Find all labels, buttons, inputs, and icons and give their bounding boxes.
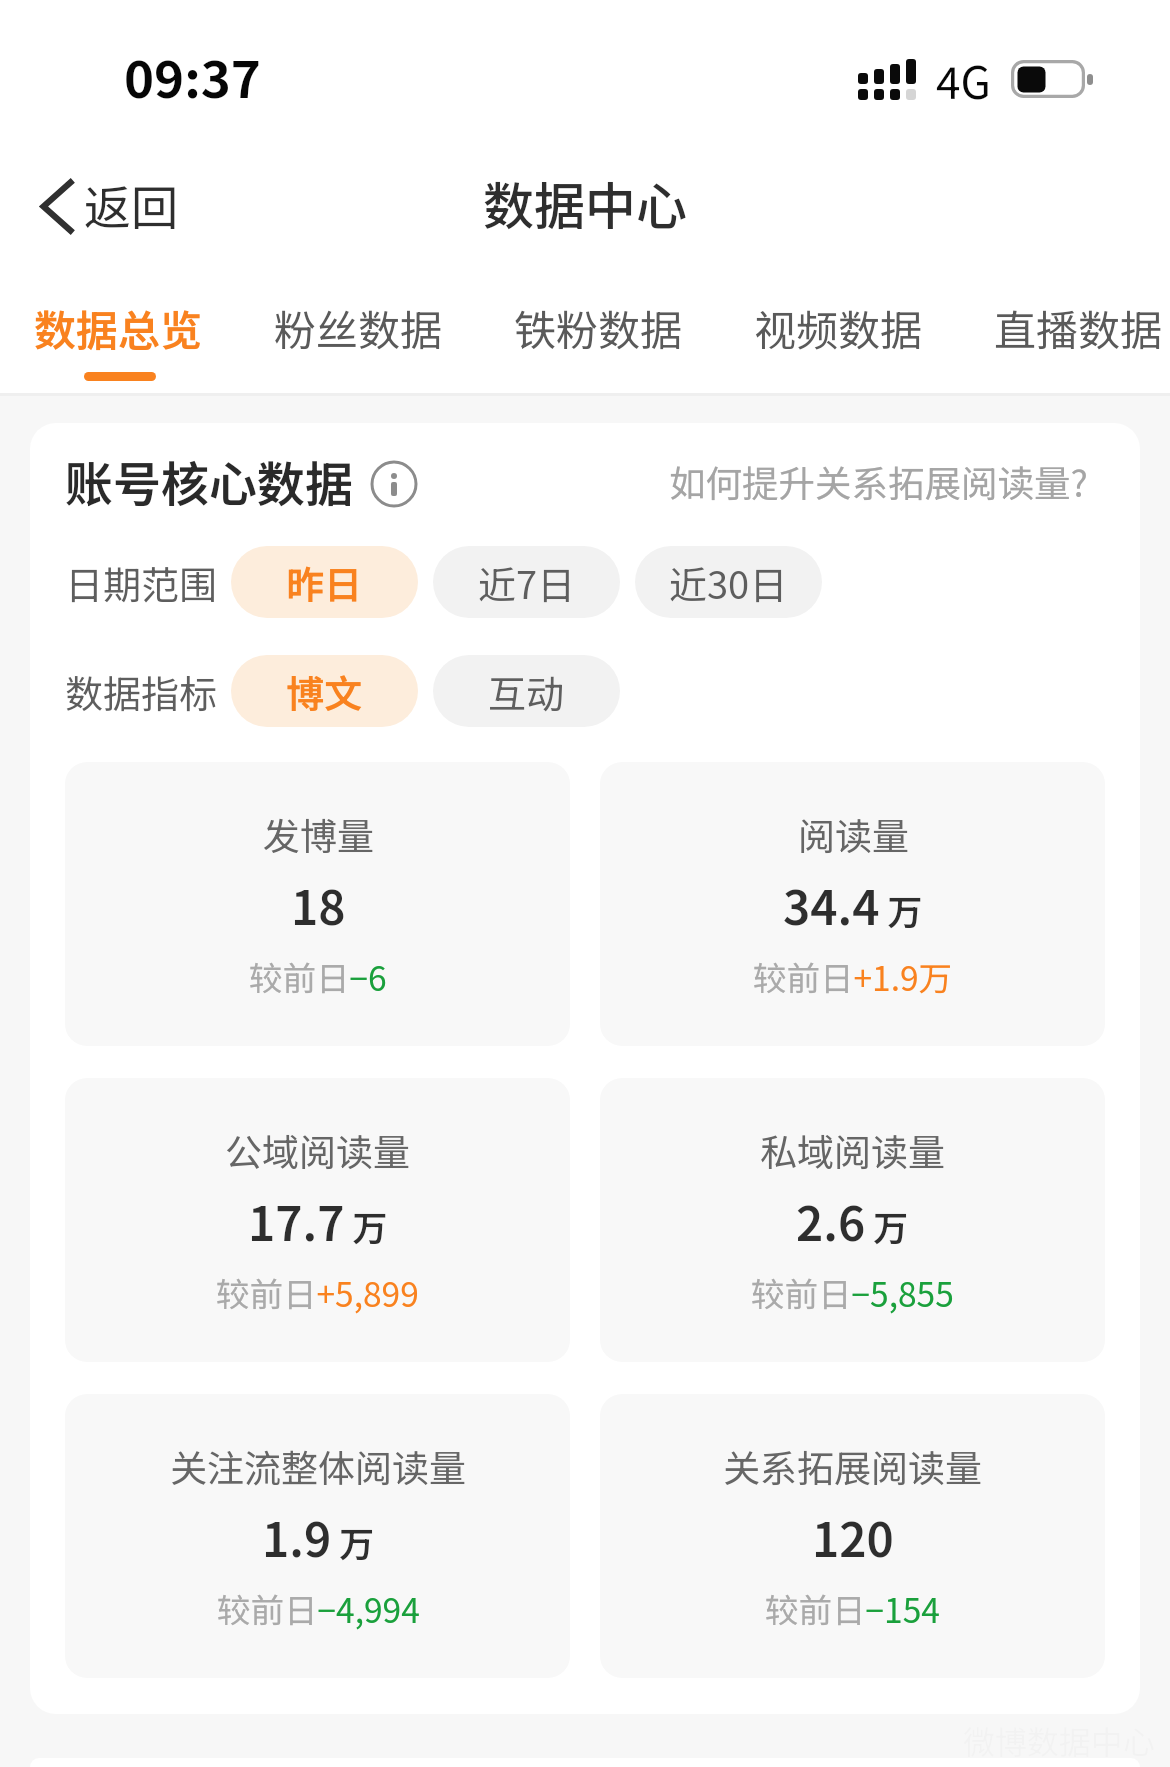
staticText: 34.4 万: [783, 870, 923, 938]
button[interactable]: 关系拓展阅读量: [600, 1394, 1105, 1678]
button[interactable]: 数据总览: [0, 271, 238, 393]
staticText: 近7日: [478, 555, 576, 610]
button[interactable]: 博文: [231, 655, 418, 727]
staticText: 铁粉数据: [478, 297, 718, 358]
button[interactable]: 说明: [370, 460, 418, 508]
staticText: 粉丝数据: [238, 297, 478, 358]
staticText: 较前日−6: [249, 952, 387, 1001]
staticText: 120: [812, 1502, 894, 1570]
staticText: 较前日−5,855: [751, 1268, 954, 1317]
button[interactable]: 阅读量: [600, 762, 1105, 1046]
staticText: 直播数据: [958, 297, 1170, 358]
staticText: 阅读量: [798, 807, 909, 861]
staticText: 4G: [936, 48, 991, 112]
button[interactable]: 近7日: [433, 546, 620, 618]
staticText: 17.7 万: [248, 1186, 388, 1254]
staticText: 昨日: [286, 555, 363, 610]
staticText: 较前日−154: [765, 1584, 940, 1633]
staticText: 较前日−4,994: [217, 1584, 420, 1633]
button[interactable]: 视频数据: [718, 271, 958, 393]
staticText: 私域阅读量: [760, 1123, 945, 1177]
staticText: 较前日+5,899: [216, 1268, 419, 1317]
staticText: 返回: [84, 170, 178, 238]
button[interactable]: 粉丝数据: [238, 271, 478, 393]
button[interactable]: 关注流整体阅读量: [65, 1394, 570, 1678]
staticText: 数据指标: [65, 664, 218, 719]
button[interactable]: 铁粉数据: [478, 271, 718, 393]
staticText: 发博量: [263, 807, 374, 861]
staticText: 互动: [488, 664, 565, 719]
staticText: 视频数据: [718, 297, 958, 358]
staticText: 09:37: [124, 39, 261, 113]
staticText: 关注流整体阅读量: [170, 1439, 466, 1493]
staticText: 数据总览: [0, 297, 238, 358]
button[interactable]: 互动: [433, 655, 620, 727]
button[interactable]: 返回: [24, 156, 194, 252]
button[interactable]: 发博量: [65, 762, 570, 1046]
staticText: 18: [291, 870, 346, 938]
button[interactable]: 如何提升关系拓展阅读量?: [669, 455, 1105, 508]
staticText: 关系拓展阅读量: [723, 1439, 982, 1493]
staticText: 博文: [286, 664, 363, 719]
staticText: 近30日: [669, 555, 788, 610]
staticText: 1.9 万: [262, 1502, 375, 1570]
staticText: 公域阅读量: [225, 1123, 410, 1177]
staticText: 较前日+1.9万: [753, 952, 953, 1001]
button[interactable]: 公域阅读量: [65, 1078, 570, 1362]
staticText: 微博数据中心: [963, 1717, 1156, 1763]
staticText: 2.6 万: [796, 1186, 909, 1254]
button[interactable]: 私域阅读量: [600, 1078, 1105, 1362]
button[interactable]: 昨日: [231, 546, 418, 618]
staticText: 数据中心: [483, 166, 688, 240]
staticText: 账号核心数据: [65, 446, 354, 516]
staticText: 日期范围: [65, 555, 218, 610]
button[interactable]: 直播数据: [958, 271, 1170, 393]
button[interactable]: 近30日: [635, 546, 822, 618]
